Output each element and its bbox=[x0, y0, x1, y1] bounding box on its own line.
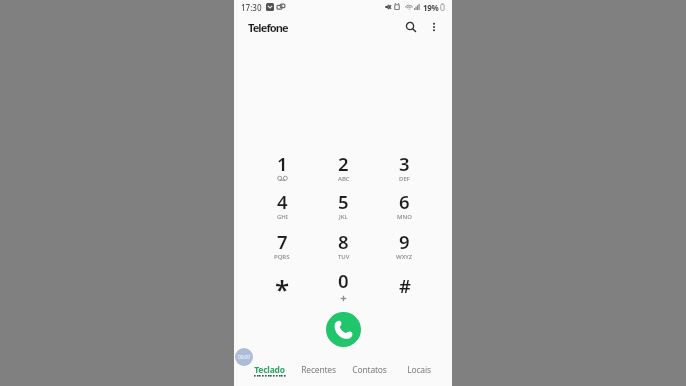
staticText: 19% bbox=[423, 2, 439, 13]
staticText: Contatos bbox=[352, 364, 387, 376]
button[interactable]: Recentes bbox=[293, 364, 343, 386]
button[interactable]: 0 bbox=[313, 266, 374, 305]
staticText: 7 bbox=[277, 229, 288, 254]
button[interactable]: 1 bbox=[251, 149, 313, 188]
staticText: DEF bbox=[399, 175, 410, 183]
staticText: 3 bbox=[399, 151, 410, 176]
staticText: 4 bbox=[277, 189, 288, 214]
staticText: 17:30 bbox=[241, 2, 262, 13]
staticText: GHI bbox=[277, 213, 288, 221]
staticText: 00:07 bbox=[238, 354, 251, 361]
staticText: MNO bbox=[397, 213, 412, 221]
staticText: 5 bbox=[338, 189, 349, 214]
staticText: JKL bbox=[339, 213, 348, 221]
button[interactable]: 7 bbox=[251, 227, 313, 266]
button[interactable]: 2 bbox=[313, 149, 374, 188]
staticText: 2 bbox=[338, 151, 349, 176]
button[interactable]: 5 bbox=[313, 187, 374, 226]
staticText: Telefone bbox=[248, 20, 288, 35]
button[interactable]: 4 bbox=[251, 187, 313, 226]
button[interactable]: Teclado bbox=[246, 364, 292, 386]
staticText: 0 bbox=[338, 268, 349, 293]
button[interactable]: Contatos bbox=[344, 364, 394, 386]
button[interactable]: Search bbox=[400, 16, 422, 38]
button[interactable]: # bbox=[374, 266, 435, 305]
staticText: Recentes bbox=[301, 364, 336, 376]
staticText: PQRS bbox=[274, 253, 290, 261]
button[interactable]: 3 bbox=[374, 149, 435, 188]
staticText: Teclado bbox=[254, 364, 285, 376]
staticText: Locais bbox=[407, 364, 431, 376]
staticText: 9 bbox=[399, 229, 410, 254]
staticText: 8 bbox=[338, 229, 349, 254]
button[interactable]: 6 bbox=[374, 187, 435, 226]
button[interactable]: Call bbox=[326, 312, 361, 347]
button[interactable]: Locais bbox=[398, 364, 440, 386]
staticText: TUV bbox=[338, 253, 350, 261]
staticText: # bbox=[399, 273, 411, 298]
button[interactable]: More options bbox=[423, 16, 445, 38]
button[interactable]: 9 bbox=[374, 227, 435, 266]
button[interactable]: * bbox=[251, 266, 313, 305]
staticText: 6 bbox=[399, 189, 410, 214]
staticText: WXYZ bbox=[396, 253, 413, 261]
staticText: * bbox=[275, 271, 290, 306]
staticText: ABC bbox=[338, 175, 350, 183]
staticText: 1 bbox=[277, 151, 288, 176]
button[interactable]: 8 bbox=[313, 227, 374, 266]
